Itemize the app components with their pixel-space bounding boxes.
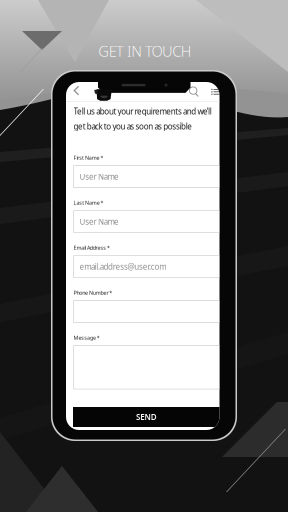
- staticText: User Name: [79, 171, 119, 182]
- staticText: get back to you as soon as possible: [73, 121, 192, 132]
- staticText: SEND: [136, 412, 157, 422]
- button[interactable]: Search: [188, 85, 200, 97]
- staticText: Message *: [73, 334, 100, 341]
- staticText: Phone Number *: [73, 289, 112, 296]
- staticText: User Name: [79, 216, 119, 227]
- staticText: Last Name *: [73, 199, 103, 206]
- button[interactable]: Menu: [211, 86, 220, 95]
- staticText: Email Address *: [73, 244, 110, 251]
- button[interactable]: Back: [69, 83, 83, 98]
- staticText: email.address@user.com: [79, 261, 166, 272]
- button[interactable]: SEND: [73, 407, 219, 427]
- staticText: GET IN TOUCH: [98, 41, 192, 61]
- staticText: First Name *: [73, 154, 103, 161]
- staticText: Tell us about your requirements and we'l…: [73, 106, 212, 117]
